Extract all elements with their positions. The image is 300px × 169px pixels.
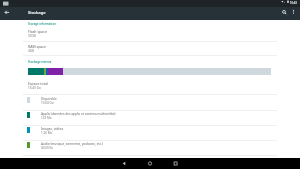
- staticText: RAM space: [28, 44, 46, 49]
- staticText: 32GB: [28, 34, 36, 38]
- staticText: Stockage interne: [28, 60, 52, 64]
- button[interactable]: Flash space: [0, 25, 300, 40]
- staticText: 10.04 Go: [41, 101, 54, 105]
- staticText: Stockage: [28, 10, 46, 15]
- button[interactable]: Disponible: [0, 94, 300, 109]
- staticText: Disponible: [41, 97, 57, 101]
- button[interactable]: Recent apps: [170, 158, 182, 169]
- button[interactable]: More options: [289, 7, 299, 17]
- staticText: Applis (données des applis et contenu mu…: [41, 112, 116, 116]
- button[interactable]: Back: [118, 158, 130, 169]
- button[interactable]: RAM space: [0, 40, 300, 55]
- button[interactable]: Images, vidéos: [0, 124, 300, 139]
- staticText: 15.40 Go: [28, 86, 41, 90]
- button[interactable]: Applis (données des applis et contenu mu…: [0, 109, 300, 124]
- button[interactable]: Search: [278, 7, 291, 20]
- staticText: 16:43: [290, 1, 297, 5]
- staticText: 40.00 Ko: [41, 146, 54, 150]
- button[interactable]: Audio (musique, sonneries, podcasts, etc…: [0, 139, 300, 154]
- button[interactable]: Home: [144, 158, 156, 169]
- staticText: Espace total: [28, 81, 48, 86]
- staticText: Images, vidéos: [41, 127, 64, 131]
- staticText: 1.26 Mo: [41, 131, 53, 135]
- staticText: 4GB: [28, 49, 35, 53]
- staticText: Audio (musique, sonneries, podcasts, etc…: [41, 142, 103, 146]
- staticText: 123 Mo: [41, 116, 52, 120]
- staticText: Flash space: [28, 29, 47, 34]
- button[interactable]: Espace total: [0, 77, 300, 92]
- button[interactable]: Back: [0, 7, 13, 20]
- staticText: Storage information: [28, 22, 56, 26]
